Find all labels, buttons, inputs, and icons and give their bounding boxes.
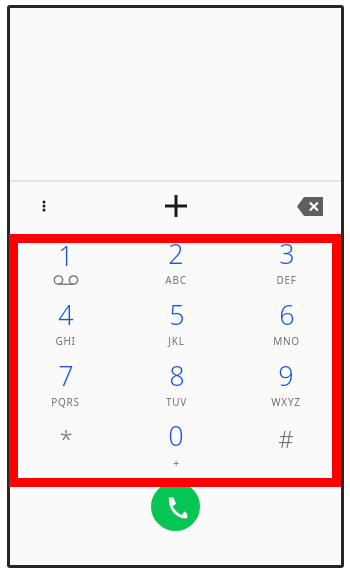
button[interactable]: 7: [10, 352, 121, 413]
staticText: GHI: [55, 334, 76, 348]
button[interactable]: 9: [231, 352, 341, 413]
staticText: WXYZ: [271, 395, 301, 409]
button[interactable]: Add contact: [154, 184, 198, 228]
staticText: JKL: [168, 334, 185, 348]
staticText: 5: [169, 296, 185, 333]
staticText: 9: [278, 357, 294, 394]
staticText: TUV: [166, 395, 187, 409]
staticText: DEF: [276, 273, 297, 287]
button[interactable]: *: [10, 413, 121, 474]
staticText: *: [59, 422, 73, 455]
staticText: MNO: [273, 334, 300, 348]
button[interactable]: 2: [121, 230, 231, 291]
staticText: 2: [168, 235, 184, 272]
staticText: 6: [279, 296, 295, 333]
button[interactable]: Call: [151, 482, 200, 531]
staticText: 4: [58, 296, 74, 333]
button[interactable]: 5: [121, 291, 231, 352]
staticText: 0: [168, 417, 184, 454]
button[interactable]: 4: [10, 291, 121, 352]
staticText: 1: [58, 237, 74, 274]
staticText: PQRS: [51, 395, 80, 409]
button[interactable]: 6: [231, 291, 341, 352]
button[interactable]: 0: [121, 413, 231, 474]
staticText: #: [278, 422, 294, 455]
button[interactable]: More options: [24, 186, 64, 226]
staticText: 7: [58, 357, 74, 394]
button[interactable]: 8: [121, 352, 231, 413]
button[interactable]: #: [231, 413, 341, 474]
staticText: 8: [169, 357, 185, 394]
staticText: ABC: [165, 273, 187, 287]
button[interactable]: 1: [10, 230, 121, 291]
button[interactable]: Backspace: [289, 185, 331, 227]
button[interactable]: 3: [231, 230, 341, 291]
staticText: +: [173, 455, 180, 470]
staticText: 3: [279, 235, 295, 272]
